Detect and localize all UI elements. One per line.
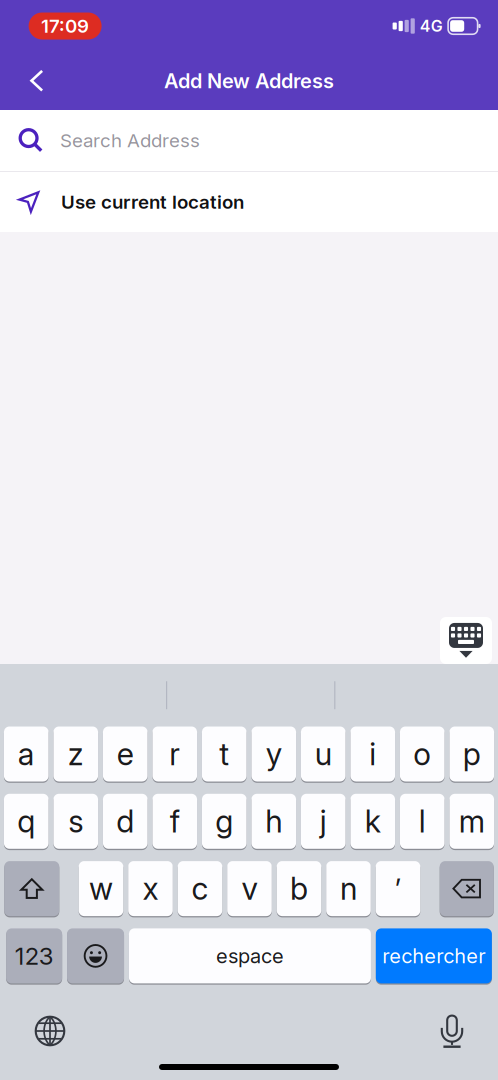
staticText: rechercher [382,944,485,968]
staticText: g [215,803,233,840]
button[interactable]: Next keyboard [28,1009,72,1053]
button[interactable]: 123 [6,928,62,983]
staticText: d [116,803,134,840]
staticText: Use current location [61,191,244,213]
button[interactable]: v [227,861,272,916]
staticText: n [340,870,357,907]
button[interactable]: espace [129,928,371,983]
button[interactable]: Shift [4,861,59,916]
button[interactable]: q [4,794,48,849]
button[interactable]: Search Address [0,110,498,171]
staticText: Add New Address [164,69,334,93]
button[interactable]: o [400,726,444,781]
staticText: x [142,870,158,907]
button[interactable]: h [251,794,296,849]
button[interactable]: rechercher [376,928,492,983]
staticText: e [117,735,134,772]
button[interactable]: x [128,861,173,916]
button[interactable]: p [449,726,494,781]
button[interactable]: Back [15,59,59,103]
button[interactable]: w [79,861,123,916]
button[interactable]: Delete [440,861,494,916]
button[interactable]: a [4,726,48,781]
staticText: t [219,735,229,772]
staticText: o [413,735,431,772]
staticText: h [265,803,282,840]
button[interactable]: k [350,794,395,849]
button[interactable]: t [202,726,246,781]
staticText: 4G [420,16,443,36]
staticText: Search Address [60,129,200,152]
staticText: z [68,735,84,772]
staticText: a [18,735,35,772]
button[interactable]: y [251,726,296,781]
staticText: p [463,735,481,772]
button[interactable]: f [152,794,197,849]
button[interactable]: Use current location [0,172,498,232]
button[interactable]: z [53,726,98,781]
button[interactable]: i [350,726,395,781]
staticText: u [315,735,332,772]
staticText: c [191,870,208,907]
staticText: y [266,735,282,772]
staticText: b [290,870,308,907]
staticText: l [419,803,426,840]
button[interactable]: n [326,861,371,916]
staticText: 17:09 [41,15,89,37]
staticText: w [89,870,113,907]
staticText: espace [216,944,284,968]
staticText: f [170,803,180,840]
staticText: i [369,735,376,772]
staticText: ’ [394,872,401,906]
button[interactable]: Emoji [67,928,124,983]
button[interactable]: ’ [376,861,420,916]
button[interactable]: c [178,861,222,916]
button[interactable]: l [400,794,444,849]
button[interactable]: u [301,726,345,781]
button[interactable]: s [53,794,98,849]
button[interactable]: r [152,726,197,781]
staticText: j [320,803,327,840]
button[interactable]: Dictation [430,1009,474,1053]
button[interactable]: e [103,726,147,781]
button[interactable]: b [277,861,321,916]
button[interactable]: Hide keyboard [440,617,492,664]
staticText: 123 [15,941,54,970]
staticText: m [459,803,485,840]
button[interactable]: j [301,794,345,849]
staticText: q [17,803,35,840]
button[interactable]: m [449,794,494,849]
button[interactable]: g [202,794,246,849]
staticText: s [68,803,83,840]
staticText: k [365,803,381,840]
staticText: v [241,870,257,907]
button[interactable]: d [103,794,147,849]
staticText: r [169,735,180,772]
